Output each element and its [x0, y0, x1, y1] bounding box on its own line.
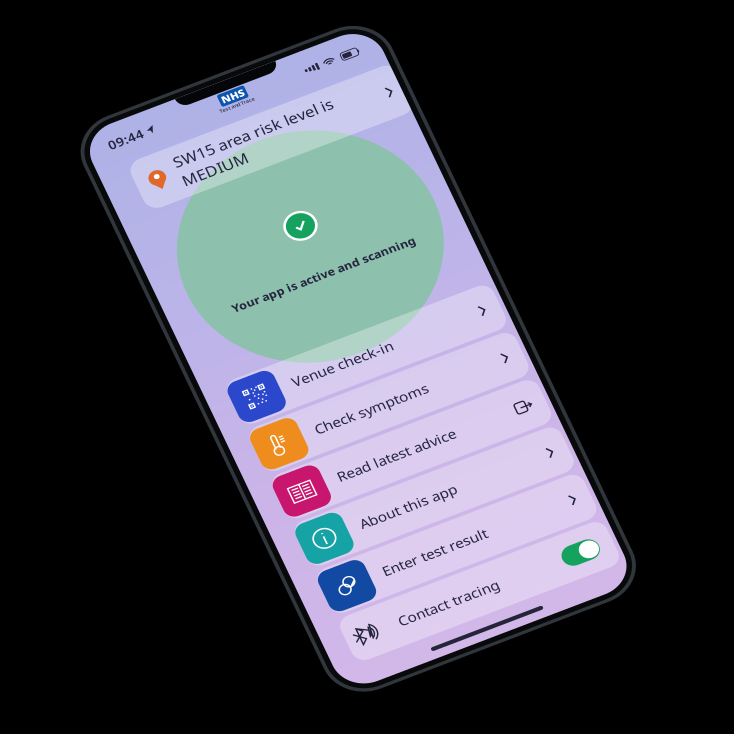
button[interactable]: Venue check-in — [238, 339, 514, 392]
staticText: About this app — [299, 527, 399, 547]
button[interactable]: SW15 area risk level is — [245, 78, 523, 136]
staticText: Your app is active and scanning — [277, 259, 467, 275]
button[interactable]: Read latest advice — [238, 453, 514, 506]
staticText: Contact tracing — [292, 641, 396, 661]
staticText: Check symptoms — [299, 413, 416, 433]
staticText: Venue check-in — [299, 356, 403, 376]
button[interactable]: Enter test result — [238, 567, 514, 620]
staticText: Enter test result — [299, 584, 407, 604]
staticText: SW15 area risk level is — [287, 85, 452, 106]
staticText: Test and Trace — [349, 57, 385, 65]
button[interactable]: About this app — [238, 510, 514, 563]
staticText: MEDIUM — [287, 107, 355, 129]
staticText: NHS — [355, 43, 378, 58]
button[interactable]: Check symptoms — [238, 396, 514, 449]
staticText: 09:44 — [237, 44, 273, 62]
staticText: Read latest advice — [299, 470, 421, 490]
button[interactable]: Contact tracing — [238, 624, 514, 677]
